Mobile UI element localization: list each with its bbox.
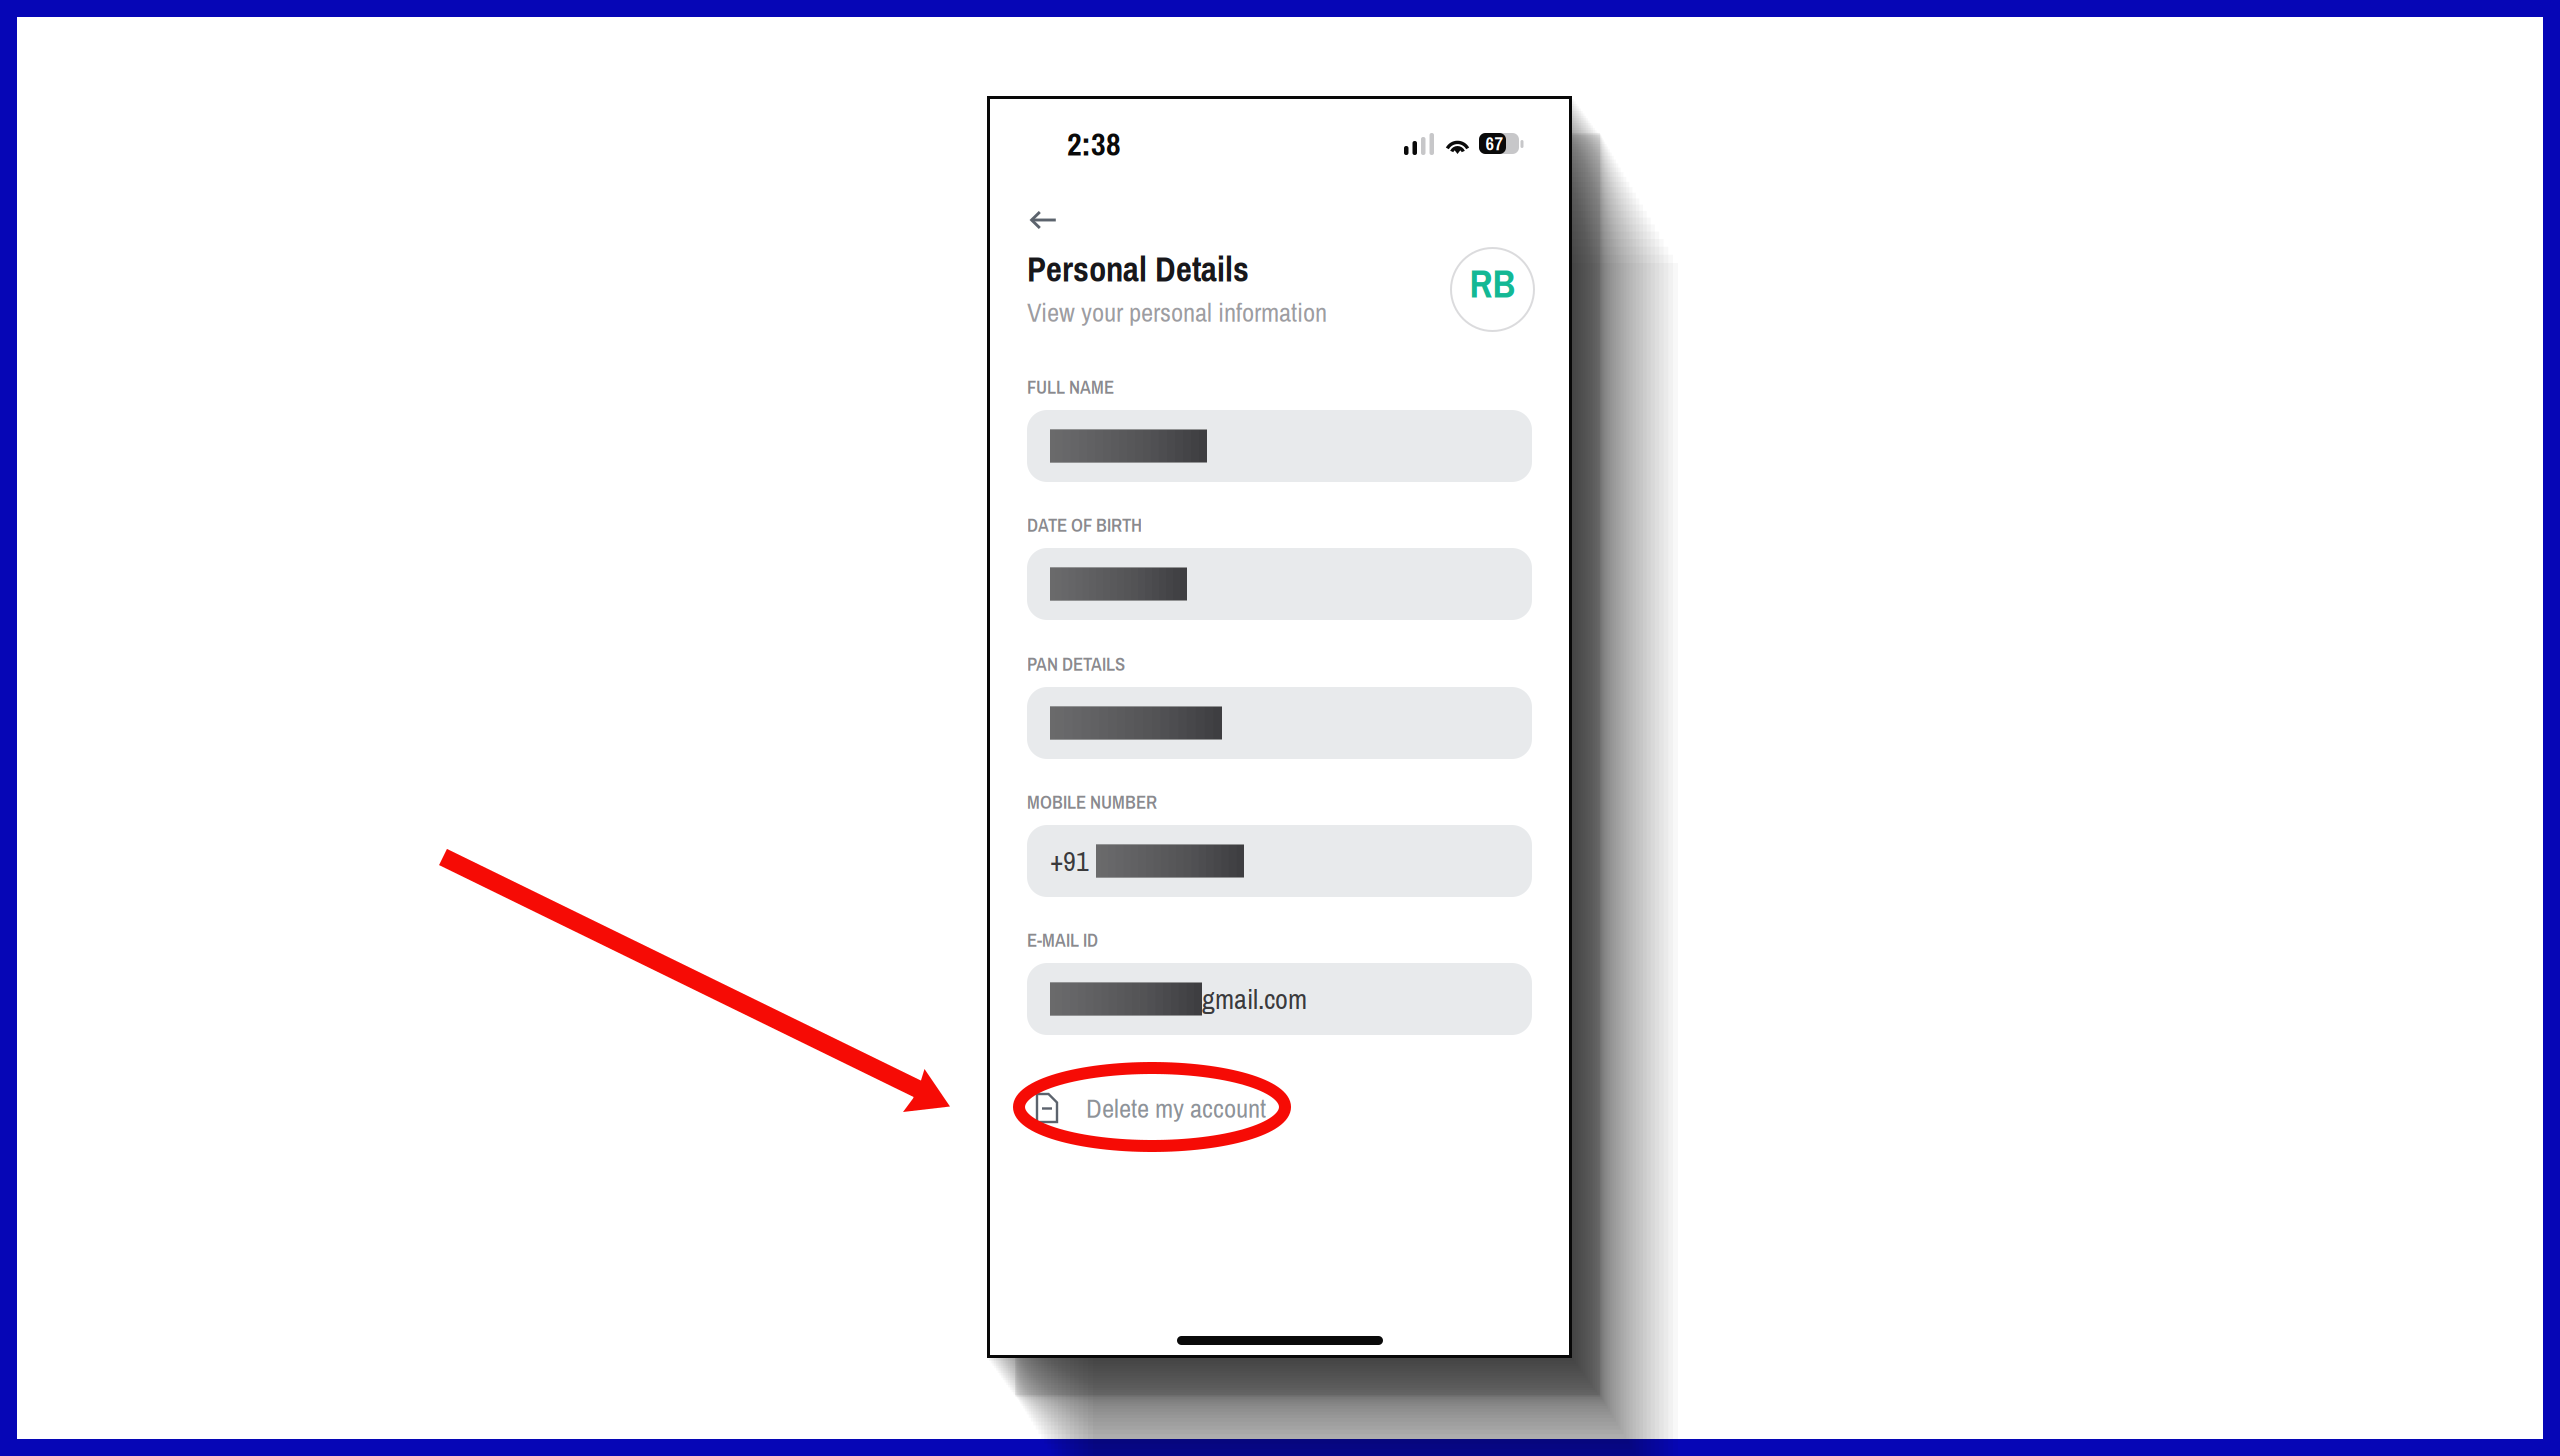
staticText: View your personal information [1027, 294, 1327, 330]
staticText: Personal Details [1027, 246, 1249, 292]
staticText: RB [1469, 257, 1515, 310]
staticText: 2:38 [1067, 122, 1121, 165]
staticText: Delete my account [1086, 1090, 1266, 1126]
button[interactable]: Back [0, 0, 2560, 1456]
button[interactable]: Delete my account [0, 0, 2560, 1456]
staticText: +91 [1050, 842, 1089, 880]
staticText: gmail.com [1202, 980, 1307, 1018]
staticText: PAN DETAILS [1027, 651, 1125, 676]
staticText: E-MAIL ID [1027, 927, 1098, 952]
staticText: DATE OF BIRTH [1027, 512, 1142, 537]
staticText: MOBILE NUMBER [1027, 789, 1157, 814]
staticText: 67 [1485, 131, 1503, 156]
staticText: FULL NAME [1027, 374, 1114, 399]
button[interactable]: Account [0, 0, 2560, 1456]
